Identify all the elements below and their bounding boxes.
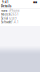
- staticText: 17.4.1: [9, 20, 19, 24]
- staticText: A2651: [9, 13, 19, 16]
- staticText: Model: [1, 13, 10, 16]
- staticText: iPhone: [9, 9, 20, 12]
- staticText: F2LX9: [9, 17, 17, 20]
- staticText: Serial: [1, 17, 8, 20]
- staticText: ◼◼: [33, 0, 37, 3]
- staticText: Details: [1, 4, 11, 8]
- staticText: 9:41: [2, 0, 9, 4]
- staticText: Software: [1, 20, 12, 24]
- staticText: Name: [1, 9, 8, 12]
